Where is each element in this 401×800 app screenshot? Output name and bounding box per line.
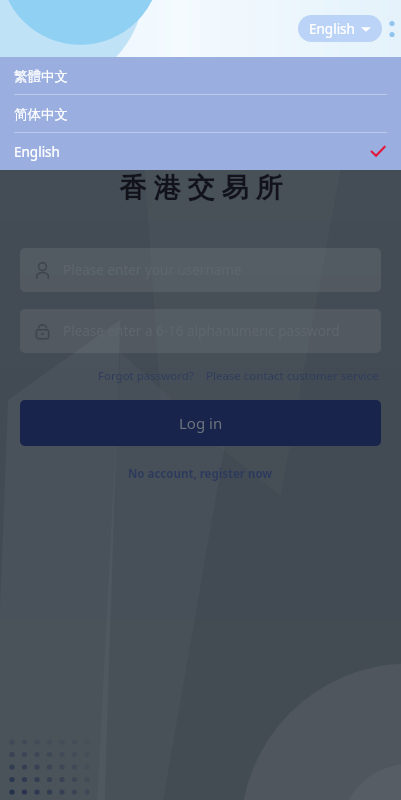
staticText: 简体中文	[14, 106, 68, 123]
button[interactable]: Please contact customer service	[204, 365, 381, 387]
button[interactable]: English	[298, 15, 382, 42]
staticText: English	[309, 20, 355, 38]
button[interactable]: Please enter a 6-16 alphanumeric passwor…	[20, 309, 381, 353]
staticText: Please enter your username	[63, 261, 242, 279]
staticText: No account, register now	[128, 466, 273, 482]
button[interactable]: Forgot password?	[96, 365, 196, 387]
staticText: 香 港 交 易 所	[119, 168, 283, 205]
staticText: Please enter a 6-16 alphanumeric passwor…	[63, 322, 340, 340]
button[interactable]: English	[0, 133, 401, 170]
staticText: Forgot password?	[98, 368, 194, 384]
staticText: Log in	[179, 413, 223, 433]
staticText: Please contact customer service	[206, 368, 379, 384]
button[interactable]: 繁體中文	[0, 57, 401, 95]
staticText: English	[14, 143, 60, 161]
button[interactable]: Log in	[20, 400, 381, 446]
button[interactable]: No account, register now	[124, 462, 277, 486]
staticText: 繁體中文	[14, 68, 68, 85]
button[interactable]: 简体中文	[0, 95, 401, 133]
